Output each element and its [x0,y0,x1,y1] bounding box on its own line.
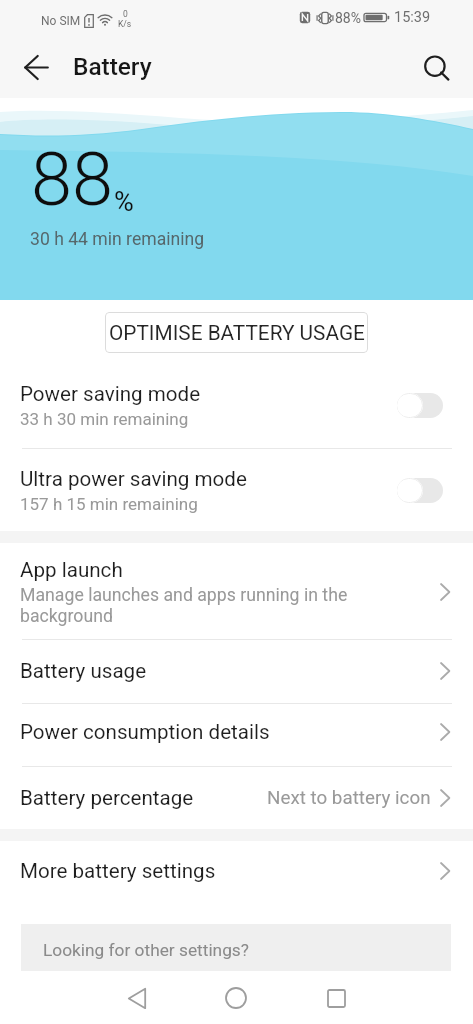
staticText: 0 [123,9,128,19]
staticText: K/s [118,19,132,29]
staticText: 30 h 44 min remaining [30,229,205,250]
staticText: 88% [335,10,361,26]
button[interactable]: Recents [301,974,371,1022]
staticText: OPTIMISE BATTERY USAGE [109,321,365,345]
staticText: background [20,606,113,627]
staticText: Battery [73,52,152,81]
button[interactable]: OPTIMISE BATTERY USAGE [105,312,368,353]
staticText: App launch [20,558,123,582]
staticText: Ultra power saving mode [20,467,247,491]
button[interactable]: Search [413,46,459,92]
staticText: No SIM [41,14,81,28]
staticText: Power consumption details [20,720,435,744]
staticText: More battery settings [20,859,435,883]
button[interactable]: Back [102,974,172,1022]
staticText: Looking for other settings? [43,940,249,960]
staticText: Battery percentage [20,786,267,810]
button[interactable]: Looking for other settings? [21,924,451,971]
staticText: Battery usage [20,659,435,683]
button[interactable]: Ultra power saving mode [0,452,473,529]
staticText: % [114,186,134,218]
staticText: 88 [31,136,114,223]
staticText: 33 h 30 min remaining [20,409,189,429]
button[interactable]: More battery settings [0,839,473,902]
button[interactable]: Back [13,44,59,90]
button[interactable]: App launch [0,549,473,635]
button[interactable]: Battery usage [0,639,473,702]
staticText: 15:39 [394,9,431,26]
staticText: Manage launches and apps running in the [20,585,348,606]
button[interactable]: Battery percentage [0,766,473,829]
button[interactable]: Power saving mode [0,367,473,444]
staticText: 157 h 15 min remaining [20,494,198,514]
staticText: Next to battery icon [267,787,431,809]
button[interactable]: Power consumption details [0,700,473,763]
staticText: Power saving mode [20,382,201,406]
button[interactable]: Home [201,974,271,1022]
